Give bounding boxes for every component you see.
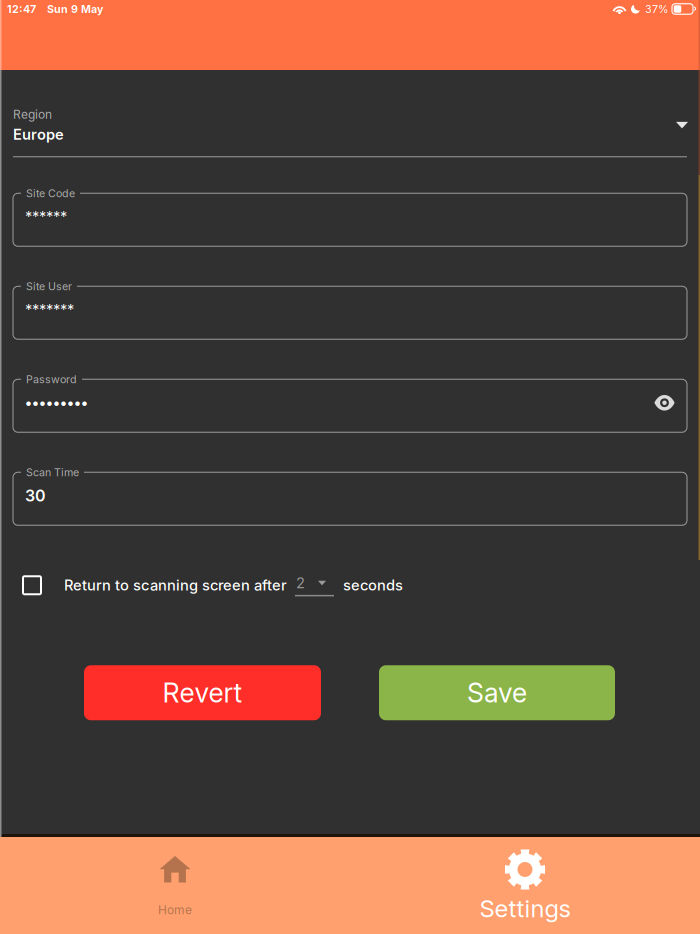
button[interactable]: Home [0,837,350,934]
staticText: Save [467,677,527,709]
staticText: seconds [343,576,403,594]
staticText: 12:47 [7,2,36,15]
staticText: 37% [645,2,668,15]
staticText: Scan Time [26,466,79,479]
staticText: Revert [162,677,242,709]
staticText: 2 [296,574,305,592]
button[interactable]: Show password [654,398,675,414]
button[interactable]: Settings [350,837,700,934]
button[interactable]: Revert [84,665,321,720]
staticText: Settings [479,894,570,923]
staticText: ******* [25,301,74,319]
staticText: Home [158,902,192,917]
button[interactable]: 2 [295,574,334,596]
staticText: ****** [25,208,67,226]
button[interactable]: Region [0,70,700,193]
staticText: Password [26,373,77,386]
staticText: 30 [25,486,46,505]
button[interactable]: Save [379,665,615,720]
staticText: Region [13,107,52,121]
staticText: Site Code [26,187,75,200]
staticText: Europe [13,125,64,143]
staticText: Sun 9 May [47,2,103,15]
staticText: Return to scanning screen after [64,576,287,594]
button[interactable]: Return to scanning screen checkbox [23,576,41,594]
staticText: ••••••••• [25,394,88,412]
staticText: Site User [26,280,72,293]
